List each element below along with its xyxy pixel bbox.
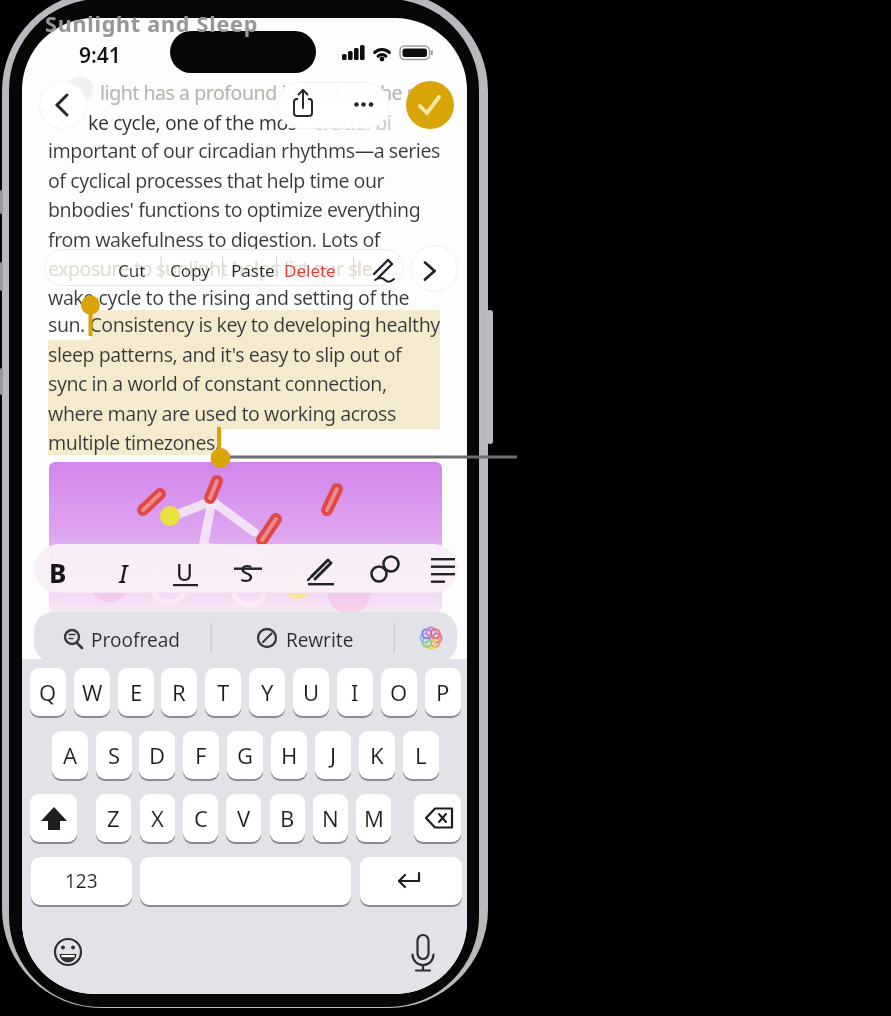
- button[interactable]: S: [96, 731, 132, 779]
- staticText: L: [415, 740, 427, 770]
- staticText: J: [330, 740, 337, 770]
- button[interactable]: C: [183, 794, 218, 842]
- button[interactable]: [411, 245, 458, 292]
- staticText: from wakefulness to digestion. Lots of: [48, 226, 381, 253]
- staticText: B: [280, 803, 295, 833]
- button[interactable]: W: [74, 668, 110, 716]
- staticText: wake cycle to the rising and setting of …: [48, 284, 410, 311]
- button[interactable]: Cut: [118, 259, 146, 282]
- staticText: F: [195, 740, 207, 770]
- staticText: I: [351, 677, 359, 707]
- staticText: G: [237, 740, 254, 770]
- button[interactable]: D: [139, 731, 175, 779]
- staticText: Proofread: [91, 627, 181, 653]
- staticText: V: [237, 803, 251, 833]
- staticText: K: [370, 740, 384, 770]
- staticText: 9:41: [79, 41, 121, 70]
- button[interactable]: P: [425, 668, 461, 716]
- button[interactable]: Z: [96, 794, 131, 842]
- staticText: N: [322, 803, 339, 833]
- staticText: C: [194, 803, 208, 833]
- staticText: crucial bi: [314, 109, 392, 136]
- button[interactable]: [39, 81, 87, 129]
- button[interactable]: [30, 794, 77, 842]
- staticText: D: [149, 740, 166, 770]
- staticText: R: [172, 677, 186, 707]
- staticText: Z: [107, 803, 120, 833]
- button[interactable]: S: [240, 556, 254, 589]
- staticText: sun. Consistency is key to developing he…: [48, 311, 440, 338]
- staticText: light has a profound impact on the sle: [100, 79, 431, 106]
- staticText: H: [281, 740, 298, 770]
- button[interactable]: [277, 82, 389, 129]
- button[interactable]: G: [227, 731, 263, 779]
- staticText: Rewrite: [286, 627, 354, 653]
- button[interactable]: M: [356, 794, 391, 842]
- button[interactable]: 123: [31, 857, 132, 905]
- staticText: W: [82, 677, 103, 707]
- staticText: bnbodies' functions to optimize everythi…: [48, 196, 421, 223]
- button[interactable]: [52, 621, 212, 655]
- button[interactable]: Delete: [284, 259, 336, 282]
- button[interactable]: [414, 794, 461, 842]
- staticText: ke cycle, one of the mos: [88, 109, 297, 136]
- staticText: U: [303, 677, 320, 707]
- staticText: exposure to sunlight helps list our sle: [48, 255, 373, 282]
- button[interactable]: A: [52, 731, 88, 779]
- button[interactable]: [360, 857, 462, 905]
- button[interactable]: U: [176, 556, 193, 587]
- button[interactable]: U: [293, 668, 329, 716]
- button[interactable]: E: [118, 668, 154, 716]
- staticText: M: [364, 803, 384, 833]
- staticText: A: [63, 740, 78, 770]
- button[interactable]: Paste: [231, 259, 275, 282]
- button[interactable]: Y: [249, 668, 285, 716]
- staticText: 123: [65, 868, 98, 894]
- staticText: sync in a world of constant connection,: [48, 370, 387, 397]
- staticText: Sunlight and Sleep: [45, 9, 259, 38]
- staticText: Q: [39, 677, 57, 707]
- button[interactable]: Q: [30, 668, 66, 716]
- button[interactable]: Copy: [170, 259, 210, 282]
- staticText: S: [108, 740, 121, 770]
- staticText: important of our circadian rhythms—a ser…: [48, 137, 440, 164]
- button[interactable]: T: [205, 668, 241, 716]
- button[interactable]: [35, 544, 457, 593]
- button[interactable]: [44, 249, 404, 286]
- button[interactable]: [140, 857, 351, 905]
- button[interactable]: B: [49, 555, 67, 590]
- button[interactable]: R: [161, 668, 197, 716]
- button[interactable]: O: [381, 668, 417, 716]
- staticText: where many are used to working across: [48, 400, 396, 427]
- button[interactable]: B: [270, 794, 305, 842]
- button[interactable]: L: [403, 731, 439, 779]
- button[interactable]: [406, 81, 454, 129]
- button[interactable]: F: [183, 731, 219, 779]
- button[interactable]: J: [315, 731, 351, 779]
- staticText: Y: [261, 677, 274, 707]
- button[interactable]: X: [140, 794, 175, 842]
- staticText: O: [390, 677, 408, 707]
- staticText: T: [217, 677, 230, 707]
- button[interactable]: I: [119, 556, 128, 590]
- staticText: sleep patterns, and it's easy to slip ou…: [48, 341, 402, 368]
- button[interactable]: K: [359, 731, 395, 779]
- button[interactable]: I: [337, 668, 373, 716]
- staticText: E: [130, 677, 143, 707]
- button[interactable]: V: [226, 794, 261, 842]
- button[interactable]: [247, 621, 387, 655]
- staticText: exposure to sunlight helps list our slee…: [48, 255, 395, 282]
- button[interactable]: H: [271, 731, 307, 779]
- staticText: X: [151, 803, 164, 833]
- staticText: of cyclical processes that help time our: [48, 167, 385, 194]
- staticText: P: [436, 677, 450, 707]
- staticText: multiple timezones.: [48, 429, 220, 456]
- button[interactable]: N: [313, 794, 348, 842]
